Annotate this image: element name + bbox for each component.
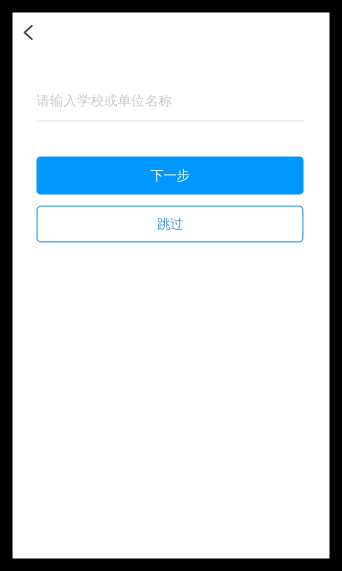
staticText: 下一步 (150, 167, 189, 184)
staticText: 请输入学校或单位名称 (36, 92, 171, 109)
staticText: 跳过 (157, 216, 183, 232)
button[interactable]: 下一步 (36, 156, 303, 194)
button[interactable]: Back (15, 19, 41, 45)
button[interactable]: 跳过 (36, 205, 303, 242)
